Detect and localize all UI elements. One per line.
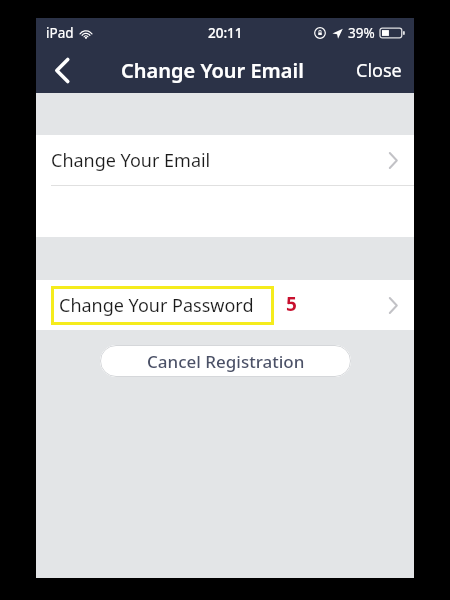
- button[interactable]: Close: [344, 47, 414, 93]
- staticText: 20:11: [208, 24, 243, 42]
- button[interactable]: Change Your Email: [36, 135, 414, 185]
- staticText: 5: [286, 291, 297, 317]
- staticText: iPad: [46, 24, 74, 42]
- staticText: Cancel Registration: [147, 350, 305, 373]
- button[interactable]: Change Your Password: [36, 280, 414, 330]
- staticText: 39%: [348, 24, 375, 42]
- staticText: Change Your Email: [121, 57, 304, 84]
- staticText: Change Your Email: [51, 148, 211, 173]
- staticText: Change Your Password: [59, 293, 254, 318]
- staticText: Close: [356, 58, 402, 83]
- button[interactable]: Back: [36, 47, 88, 93]
- button[interactable]: Cancel Registration: [100, 345, 351, 377]
